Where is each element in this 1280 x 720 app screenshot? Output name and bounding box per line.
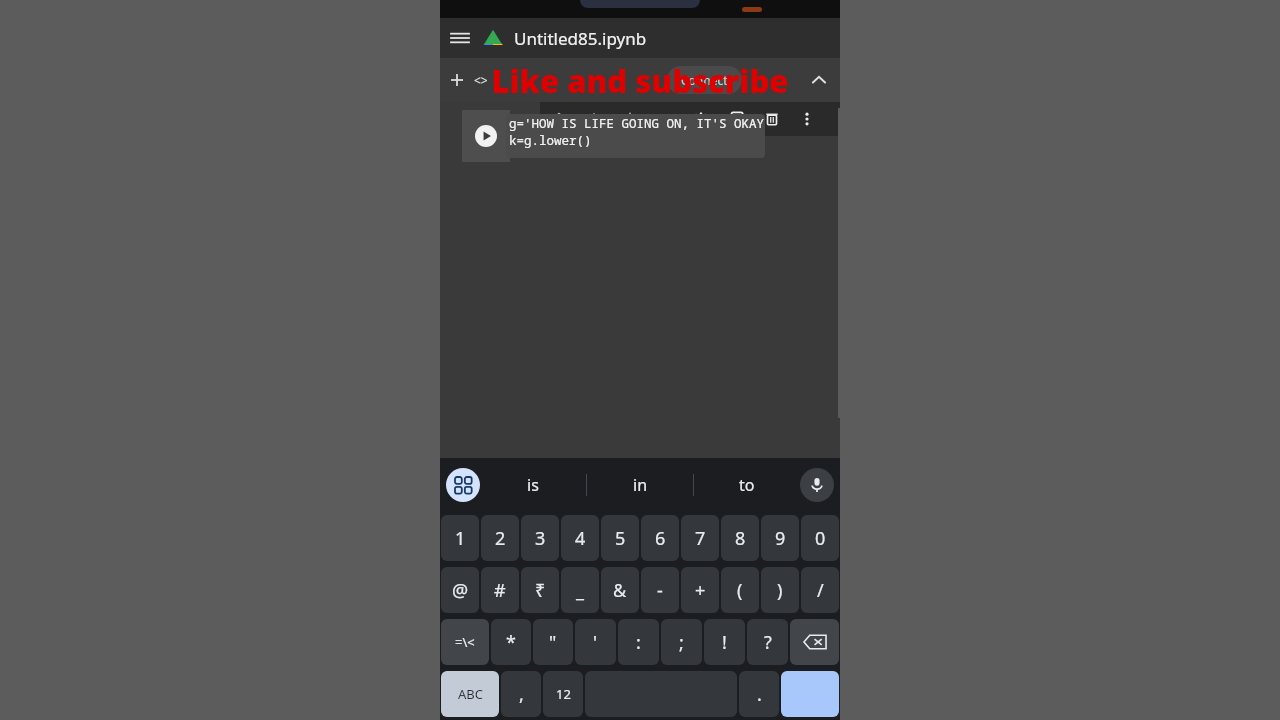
button[interactable]: 1 bbox=[441, 515, 479, 561]
staticText: ₹ bbox=[535, 578, 546, 603]
staticText: Untitled85.ipynb bbox=[514, 27, 647, 50]
button[interactable]: in bbox=[587, 458, 693, 512]
button[interactable]: ' bbox=[575, 619, 616, 665]
button[interactable]: Collapse toolbar bbox=[802, 63, 836, 97]
button[interactable]: g='HOW IS LIFE GOING ON, IT'S OKAY bbox=[506, 114, 765, 158]
staticText: 2 bbox=[495, 526, 506, 551]
button[interactable]: 0 bbox=[801, 515, 839, 561]
staticText: 7 bbox=[695, 526, 706, 551]
staticText: =\< bbox=[455, 633, 475, 651]
staticText: " bbox=[549, 630, 557, 655]
staticText: : bbox=[636, 630, 641, 655]
staticText: 6 bbox=[655, 526, 666, 551]
button[interactable]: , bbox=[501, 671, 541, 717]
staticText: 5 bbox=[615, 526, 626, 551]
staticText: ; bbox=[679, 630, 684, 655]
button[interactable]: - bbox=[641, 567, 679, 613]
staticText: 8 bbox=[735, 526, 746, 551]
staticText: Like and subscribe bbox=[491, 60, 789, 102]
staticText: <> bbox=[474, 72, 488, 88]
button[interactable]: 3 bbox=[521, 515, 559, 561]
button[interactable]: * bbox=[491, 619, 531, 665]
staticText: _ bbox=[576, 578, 584, 603]
button[interactable]: 7 bbox=[681, 515, 719, 561]
staticText: + bbox=[695, 578, 706, 603]
staticText: # bbox=[494, 578, 506, 603]
staticText: in bbox=[633, 474, 648, 496]
button[interactable]: Code snippets bbox=[468, 67, 494, 93]
button[interactable]: 12 bbox=[543, 671, 583, 717]
button[interactable]: Move cell down bbox=[579, 103, 609, 135]
staticText: * bbox=[506, 630, 516, 655]
staticText: ABC bbox=[458, 685, 483, 703]
staticText: . bbox=[757, 682, 762, 707]
staticText: @ bbox=[452, 578, 469, 603]
button[interactable]: ( bbox=[721, 567, 759, 613]
staticText: is bbox=[527, 474, 539, 496]
staticText: 1 bbox=[455, 526, 466, 551]
staticText: ' bbox=[593, 630, 598, 655]
button[interactable]: ? bbox=[747, 619, 788, 665]
button[interactable]: More options bbox=[792, 103, 822, 135]
staticText: 3 bbox=[535, 526, 546, 551]
staticText: - bbox=[657, 578, 663, 603]
button[interactable]: =\< bbox=[441, 619, 489, 665]
button[interactable]: : bbox=[618, 619, 659, 665]
button[interactable]: is bbox=[480, 458, 586, 512]
staticText: 9 bbox=[775, 526, 786, 551]
button[interactable]: Connect bbox=[667, 66, 742, 94]
staticText: 0 bbox=[815, 526, 826, 551]
staticText: Connect bbox=[681, 72, 728, 88]
button[interactable]: _ bbox=[561, 567, 599, 613]
button[interactable]: ; bbox=[661, 619, 702, 665]
button[interactable]: Toolbar bbox=[446, 468, 480, 502]
staticText: ? bbox=[764, 630, 772, 655]
staticText: ( bbox=[737, 578, 743, 603]
button[interactable]: Run cell bbox=[473, 123, 499, 149]
staticText: / bbox=[817, 578, 824, 603]
button[interactable]: Add code cell bbox=[446, 69, 468, 91]
button[interactable]: + bbox=[681, 567, 719, 613]
button[interactable]: Move cell to new tab bbox=[721, 103, 751, 135]
button[interactable]: ABC bbox=[441, 671, 499, 717]
button[interactable]: Copy link to cell bbox=[650, 103, 680, 135]
button[interactable]: Backspace bbox=[790, 619, 839, 665]
button[interactable]: ₹ bbox=[521, 567, 559, 613]
button[interactable]: 8 bbox=[721, 515, 759, 561]
button[interactable]: Open navigation menu bbox=[440, 18, 480, 58]
button[interactable]: 4 bbox=[561, 515, 599, 561]
button[interactable]: Gemini bbox=[615, 103, 645, 135]
button[interactable]: @ bbox=[441, 567, 479, 613]
staticText: to bbox=[739, 474, 755, 496]
button[interactable]: 6 bbox=[641, 515, 679, 561]
button[interactable]: Move cell up bbox=[544, 103, 574, 135]
button[interactable]: # bbox=[481, 567, 519, 613]
staticText: , bbox=[519, 682, 524, 707]
button[interactable]: . bbox=[739, 671, 779, 717]
button[interactable]: to bbox=[694, 458, 800, 512]
button[interactable]: Cell settings bbox=[686, 103, 716, 135]
button[interactable]: 2 bbox=[481, 515, 519, 561]
staticText: & bbox=[613, 578, 627, 603]
staticText: g='HOW IS LIFE GOING ON, IT'S OKAY bbox=[509, 115, 765, 132]
button[interactable]: & bbox=[601, 567, 639, 613]
button[interactable]: ) bbox=[761, 567, 799, 613]
staticText: k=g.lower() bbox=[509, 132, 592, 149]
staticText: 4 bbox=[575, 526, 586, 551]
button[interactable]: " bbox=[533, 619, 573, 665]
staticText: ! bbox=[722, 630, 727, 655]
staticText: ) bbox=[777, 578, 783, 603]
button[interactable]: / bbox=[801, 567, 839, 613]
button[interactable]: 9 bbox=[761, 515, 799, 561]
button[interactable]: Enter bbox=[781, 671, 839, 717]
button[interactable]: ! bbox=[704, 619, 745, 665]
button[interactable]: Voice input bbox=[800, 468, 834, 502]
button[interactable]: 5 bbox=[601, 515, 639, 561]
button[interactable]: Delete cell bbox=[757, 103, 787, 135]
staticText: 12 bbox=[556, 685, 571, 703]
